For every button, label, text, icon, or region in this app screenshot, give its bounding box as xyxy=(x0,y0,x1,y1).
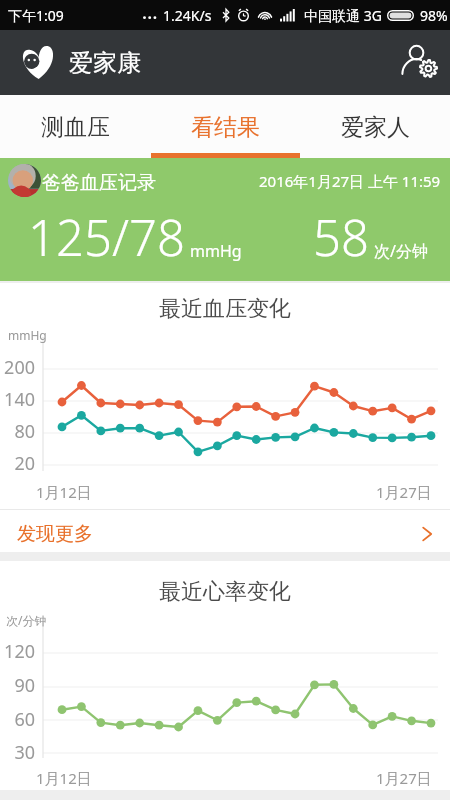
staticText: 20 xyxy=(0,451,35,476)
staticText: 次/分钟 xyxy=(6,612,47,628)
staticText: 爸爸血压记录 xyxy=(42,171,156,195)
staticText: mmHg xyxy=(8,327,47,343)
staticText: 1月27日 xyxy=(376,482,432,502)
staticText: 次/分钟 xyxy=(374,240,428,262)
staticText: 2016年1月27日 上午 11:59 xyxy=(259,171,441,191)
staticText: 60 xyxy=(0,707,35,732)
staticText: 发现更多 xyxy=(17,522,93,546)
staticText: 200 xyxy=(0,355,35,380)
staticText: 90 xyxy=(0,673,35,698)
staticText: 爱家康 xyxy=(69,48,141,78)
staticText: 1月12日 xyxy=(36,482,92,502)
staticText: 1月12日 xyxy=(36,768,92,788)
staticText: 140 xyxy=(0,387,35,412)
button[interactable]: Account settings xyxy=(393,37,445,89)
staticText: 最近血压变化 xyxy=(159,295,291,323)
staticText: 120 xyxy=(0,639,35,664)
staticText: 80 xyxy=(0,419,35,444)
staticText: mmHg xyxy=(190,240,242,262)
staticText: 看结果 xyxy=(191,113,260,142)
staticText: 最近心率变化 xyxy=(159,578,291,606)
staticText: 58 xyxy=(313,204,369,271)
button[interactable]: 测血压 xyxy=(0,95,150,158)
staticText: 1.24K/s xyxy=(163,6,212,25)
staticText: 下午1:09 xyxy=(8,6,64,25)
button[interactable]: 发现更多 xyxy=(0,513,450,555)
staticText: 98% xyxy=(420,6,448,25)
staticText: 30 xyxy=(0,740,35,765)
staticText: 125/78 xyxy=(28,204,185,271)
staticText: 测血压 xyxy=(41,113,110,142)
button[interactable]: 看结果 xyxy=(150,95,300,158)
staticText: 1月27日 xyxy=(376,768,432,788)
button[interactable]: 爱家人 xyxy=(300,95,450,158)
staticText: 爱家人 xyxy=(341,113,410,142)
staticText: 中国联通 3G xyxy=(304,6,382,25)
